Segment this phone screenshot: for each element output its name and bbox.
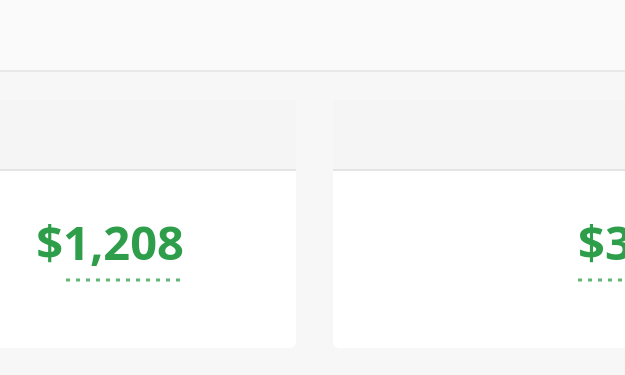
button[interactable]: Monthly revenue card [333,100,625,348]
staticText: $3,470 [578,210,625,274]
button[interactable]: Total balance card [0,100,296,348]
staticText: $1,208 [36,210,184,274]
